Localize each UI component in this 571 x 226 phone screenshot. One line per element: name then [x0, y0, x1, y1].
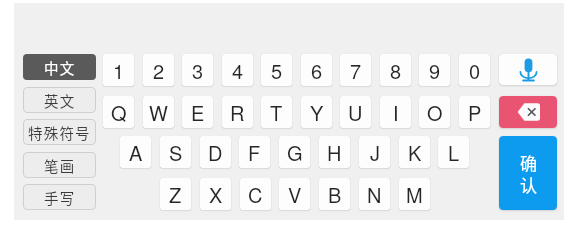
staticText: T [270, 98, 283, 127]
button[interactable]: 中文 [23, 54, 96, 80]
button[interactable]: E [182, 96, 213, 128]
button[interactable]: P [459, 96, 490, 128]
staticText: 4 [232, 56, 244, 85]
staticText: B [328, 180, 342, 209]
button[interactable]: X [200, 178, 231, 210]
staticText: 7 [350, 56, 362, 85]
button[interactable]: D [200, 136, 231, 168]
button[interactable]: 确 认 [499, 136, 557, 210]
staticText: 1 [113, 56, 125, 85]
staticText: G [287, 138, 303, 167]
staticText: 0 [469, 56, 481, 85]
button[interactable]: 2 [143, 54, 174, 86]
button[interactable]: W [143, 96, 174, 128]
button[interactable]: 1 [103, 54, 134, 86]
button[interactable]: A [120, 136, 151, 168]
button[interactable]: J [359, 136, 390, 168]
staticText: V [288, 180, 302, 209]
staticText: Z [169, 180, 182, 209]
button[interactable]: M [399, 178, 430, 210]
staticText: H [327, 138, 342, 167]
staticText: M [406, 180, 423, 209]
button[interactable]: 笔画 [23, 152, 96, 178]
staticText: 9 [429, 56, 441, 85]
button[interactable]: Y [301, 96, 332, 128]
button[interactable]: F [239, 136, 270, 168]
button[interactable]: G [279, 136, 310, 168]
button[interactable]: 特殊符号 [23, 119, 96, 145]
button[interactable]: Q [103, 96, 134, 128]
staticText: 笔画 [44, 155, 76, 176]
button[interactable]: S [160, 136, 191, 168]
button[interactable]: N [359, 178, 390, 210]
staticText: Y [310, 98, 324, 127]
staticText: F [248, 138, 261, 167]
staticText: W [149, 98, 168, 127]
button[interactable]: 5 [261, 54, 292, 86]
staticText: A [129, 138, 143, 167]
staticText: R [230, 98, 245, 127]
button[interactable]: 手写 [23, 184, 96, 210]
button[interactable]: 9 [419, 54, 450, 86]
button[interactable]: 3 [182, 54, 213, 86]
staticText: 8 [390, 56, 402, 85]
staticText: U [348, 98, 363, 127]
staticText: 5 [271, 56, 283, 85]
staticText: P [468, 98, 482, 127]
button[interactable]: 6 [301, 54, 332, 86]
button[interactable]: C [240, 178, 271, 210]
staticText: N [367, 180, 382, 209]
button[interactable]: R [222, 96, 253, 128]
staticText: J [370, 138, 380, 167]
button[interactable]: Delete [499, 96, 557, 128]
button[interactable]: V [279, 178, 310, 210]
button[interactable]: H [319, 136, 350, 168]
button[interactable]: 8 [380, 54, 411, 86]
staticText: 2 [153, 56, 165, 85]
staticText: 手写 [44, 187, 76, 208]
staticText: 确 认 [520, 150, 537, 197]
staticText: 中文 [44, 57, 76, 78]
button[interactable]: K [399, 136, 430, 168]
button[interactable]: 英文 [23, 87, 96, 113]
staticText: 3 [192, 56, 204, 85]
button[interactable]: B [319, 178, 350, 210]
button[interactable]: U [340, 96, 371, 128]
staticText: K [408, 138, 422, 167]
button[interactable]: Voice input [499, 54, 557, 85]
staticText: E [191, 98, 205, 127]
staticText: 英文 [44, 90, 76, 111]
button[interactable]: L [438, 136, 469, 168]
button[interactable]: O [419, 96, 450, 128]
button[interactable]: I [380, 96, 411, 128]
staticText: L [448, 138, 460, 167]
staticText: C [248, 180, 263, 209]
staticText: D [208, 138, 223, 167]
button[interactable]: 0 [459, 54, 490, 86]
staticText: 特殊符号 [28, 122, 91, 143]
staticText: Q [111, 98, 127, 127]
staticText: 6 [311, 56, 323, 85]
staticText: I [393, 98, 399, 127]
staticText: X [209, 180, 223, 209]
staticText: O [427, 98, 443, 127]
button[interactable]: 7 [340, 54, 371, 86]
button[interactable]: Z [160, 178, 191, 210]
staticText: S [169, 138, 183, 167]
button[interactable]: 4 [222, 54, 253, 86]
button[interactable]: T [261, 96, 292, 128]
